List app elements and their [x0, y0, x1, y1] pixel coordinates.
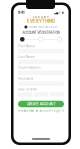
staticText: Date of Birth [18, 88, 37, 91]
staticText: ▂▄ ⌾ ▮ [54, 11, 64, 14]
staticText: L U X U R Y [33, 16, 49, 19]
staticText: 9:41 [18, 10, 24, 14]
staticText: CREATE ACCOUNT [26, 102, 55, 106]
button[interactable]: Already have an account? Sign In [17, 109, 64, 112]
staticText: Email Address [18, 66, 41, 69]
staticText: Password [18, 77, 33, 80]
staticText: Already have an account? Sign In [17, 109, 64, 112]
staticText: Create your account [29, 25, 58, 29]
staticText: First Name [18, 44, 35, 48]
staticText: Last Name [18, 55, 35, 59]
staticText: ACCOUNT REGISTRATION [22, 31, 59, 34]
staticText: EVERYTHING [27, 19, 55, 24]
button[interactable]: CREATE ACCOUNT [18, 101, 64, 107]
